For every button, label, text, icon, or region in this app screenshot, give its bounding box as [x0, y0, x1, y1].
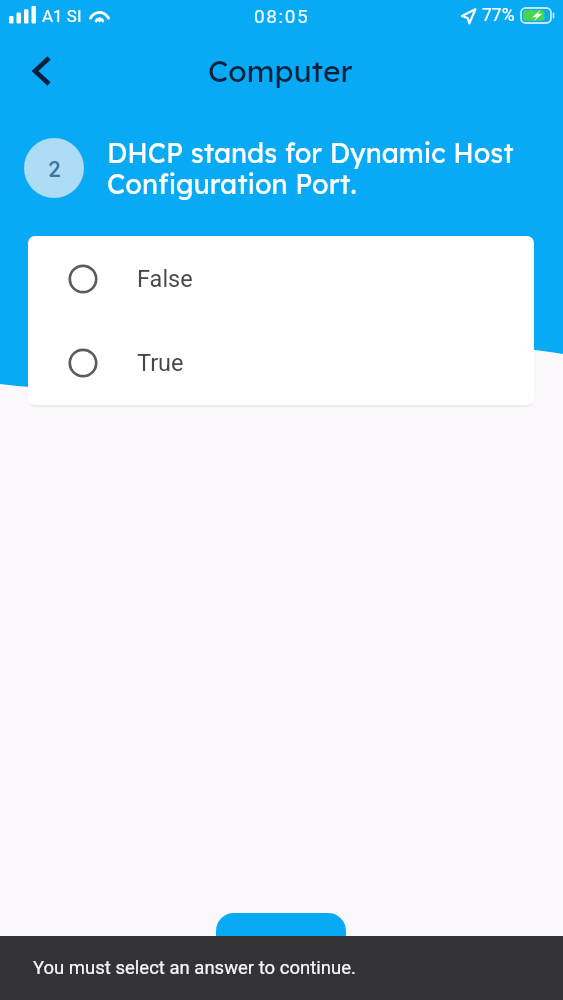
button[interactable]: True [28, 321, 534, 405]
staticText: A1 SI [42, 6, 82, 26]
staticText: DHCP stands for Dynamic Host Configurati… [107, 136, 535, 201]
button[interactable]: Submit answer [216, 913, 346, 965]
staticText: 08:05 [254, 5, 310, 27]
staticText: 2 [48, 154, 61, 183]
button[interactable]: Back [18, 47, 66, 95]
staticText: Computer [208, 52, 353, 90]
button[interactable]: False [28, 236, 534, 321]
staticText: You must select an answer to continue. [33, 957, 356, 979]
staticText: False [137, 265, 193, 293]
staticText: True [137, 349, 184, 377]
staticText: 77% [482, 5, 515, 26]
button[interactable]: You must select an answer to continue. [0, 936, 563, 1000]
